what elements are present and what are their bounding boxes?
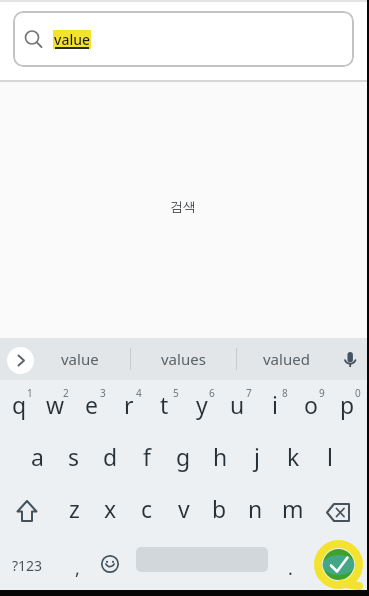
- button[interactable]: l: [311, 432, 348, 480]
- button[interactable]: [5, 488, 49, 532]
- staticText: 0: [355, 386, 361, 398]
- button[interactable]: d: [92, 432, 129, 480]
- button[interactable]: u: [219, 380, 256, 428]
- staticText: valued: [263, 349, 310, 369]
- staticText: v: [178, 493, 190, 524]
- button[interactable]: r: [110, 380, 147, 428]
- button[interactable]: m: [274, 484, 311, 532]
- button[interactable]: [7, 347, 34, 374]
- button[interactable]: p: [329, 380, 366, 428]
- button[interactable]: q: [1, 380, 38, 428]
- staticText: 8: [282, 386, 288, 398]
- staticText: x: [104, 493, 117, 524]
- button[interactable]: c: [128, 484, 165, 532]
- button[interactable]: y: [183, 380, 220, 428]
- staticText: 2: [63, 386, 69, 398]
- staticText: h: [213, 441, 228, 472]
- staticText: 4: [136, 386, 142, 398]
- staticText: y: [196, 389, 208, 420]
- staticText: r: [124, 389, 134, 420]
- staticText: l: [327, 441, 333, 472]
- staticText: j: [254, 441, 260, 472]
- button[interactable]: [88, 541, 132, 589]
- staticText: ,: [75, 556, 80, 581]
- staticText: 6: [209, 386, 215, 398]
- staticText: o: [304, 389, 318, 420]
- button[interactable]: v: [165, 484, 202, 532]
- staticText: values: [161, 349, 206, 369]
- staticText: f: [143, 441, 151, 472]
- staticText: s: [68, 441, 80, 472]
- button[interactable]: h: [202, 432, 239, 480]
- button[interactable]: valued: [245, 340, 327, 378]
- staticText: a: [31, 441, 44, 472]
- button[interactable]: z: [56, 484, 93, 532]
- button[interactable]: f: [128, 432, 165, 480]
- button[interactable]: g: [165, 432, 202, 480]
- staticText: u: [230, 389, 245, 420]
- staticText: q: [12, 389, 27, 420]
- staticText: n: [248, 493, 263, 524]
- staticText: 1: [27, 386, 33, 398]
- button[interactable]: e: [73, 380, 110, 428]
- staticText: value: [61, 349, 99, 369]
- staticText: w: [46, 389, 65, 420]
- staticText: m: [282, 493, 304, 524]
- staticText: k: [287, 441, 300, 472]
- staticText: value: [54, 30, 90, 49]
- staticText: d: [103, 441, 118, 472]
- button[interactable]: ?123: [4, 541, 50, 589]
- button[interactable]: k: [275, 432, 312, 480]
- staticText: t: [160, 389, 169, 420]
- button[interactable]: s: [55, 432, 92, 480]
- button[interactable]: [336, 348, 364, 376]
- staticText: b: [212, 493, 227, 524]
- button[interactable]: [316, 488, 360, 532]
- button[interactable]: ,: [59, 544, 95, 592]
- staticText: c: [141, 493, 153, 524]
- staticText: 3: [100, 386, 106, 398]
- button[interactable]: x: [92, 484, 129, 532]
- button[interactable]: [312, 538, 366, 592]
- staticText: 5: [173, 386, 179, 398]
- button[interactable]: [13, 11, 354, 67]
- button[interactable]: o: [292, 380, 329, 428]
- button[interactable]: a: [19, 432, 56, 480]
- staticText: p: [340, 389, 355, 420]
- staticText: 검색: [170, 198, 196, 214]
- button[interactable]: value: [39, 340, 121, 378]
- button[interactable]: t: [146, 380, 183, 428]
- staticText: ?123: [12, 556, 43, 575]
- staticText: 9: [319, 386, 325, 398]
- staticText: i: [272, 389, 278, 420]
- button[interactable]: values: [142, 340, 224, 378]
- button[interactable]: n: [237, 484, 274, 532]
- button[interactable]: .: [272, 544, 308, 592]
- staticText: 7: [246, 386, 252, 398]
- staticText: .: [288, 556, 293, 581]
- staticText: z: [69, 493, 80, 524]
- button[interactable]: i: [256, 380, 293, 428]
- button[interactable]: b: [201, 484, 238, 532]
- button[interactable]: j: [238, 432, 275, 480]
- button[interactable]: w: [37, 380, 74, 428]
- staticText: g: [176, 441, 191, 472]
- staticText: e: [85, 389, 98, 420]
